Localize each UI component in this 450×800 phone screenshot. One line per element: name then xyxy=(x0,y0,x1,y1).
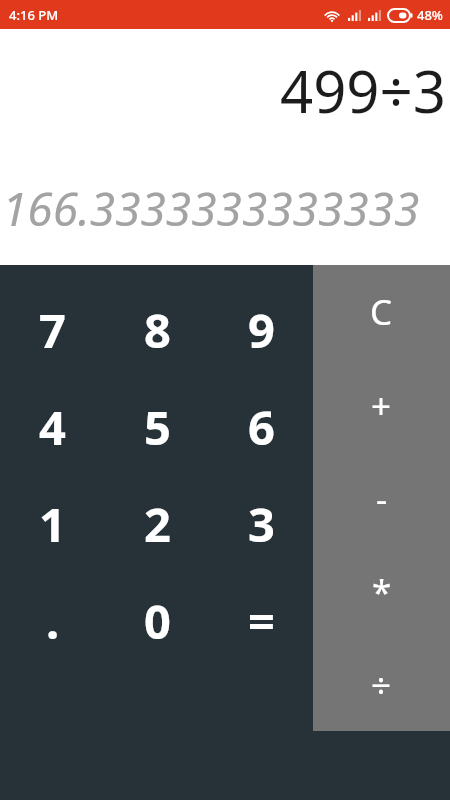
button[interactable]: 4 xyxy=(0,378,105,475)
staticText: 4 xyxy=(39,395,66,459)
staticText: 7 xyxy=(39,298,66,362)
button[interactable]: 0 xyxy=(105,572,209,669)
button[interactable]: Multiply xyxy=(313,545,450,638)
button[interactable]: Minus xyxy=(313,452,450,545)
staticText: + xyxy=(371,382,392,430)
staticText: * xyxy=(372,568,392,616)
staticText: 5 xyxy=(144,395,171,459)
staticText: 166.3333333333333 xyxy=(2,177,420,237)
staticText: 499÷3 xyxy=(280,51,446,130)
button[interactable]: 6 xyxy=(209,378,313,475)
staticText: 4:16 PM xyxy=(9,6,59,24)
button[interactable]: 9 xyxy=(209,281,313,378)
button[interactable]: Decimal point xyxy=(0,572,105,669)
staticText: 48% xyxy=(417,6,443,24)
staticText: - xyxy=(376,475,388,523)
staticText: 2 xyxy=(144,492,171,556)
staticText: 9 xyxy=(248,298,275,362)
button[interactable]: Plus xyxy=(313,359,450,452)
button[interactable]: 8 xyxy=(105,281,209,378)
staticText: 3 xyxy=(248,492,275,556)
staticText: . xyxy=(46,589,60,653)
button[interactable]: 3 xyxy=(209,475,313,572)
button[interactable]: Equals xyxy=(209,572,313,669)
staticText: = xyxy=(248,589,275,653)
staticText: C xyxy=(370,288,393,336)
staticText: 0 xyxy=(144,589,171,653)
button[interactable]: 5 xyxy=(105,378,209,475)
staticText: 6 xyxy=(248,395,275,459)
button[interactable]: 2 xyxy=(105,475,209,572)
staticText: ÷ xyxy=(371,661,392,709)
staticText: 1 xyxy=(39,492,66,556)
button[interactable]: Divide xyxy=(313,638,450,731)
staticText: 8 xyxy=(144,298,171,362)
button[interactable]: 1 xyxy=(0,475,105,572)
button[interactable]: 7 xyxy=(0,281,105,378)
button[interactable]: Clear xyxy=(313,265,450,359)
